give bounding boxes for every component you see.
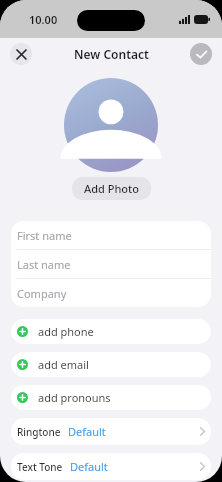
staticText: Default	[70, 459, 108, 474]
staticText: add phone	[38, 324, 94, 339]
button[interactable]: add pronouns	[11, 385, 211, 410]
staticText: add pronouns	[38, 390, 111, 405]
staticText: add email	[38, 357, 89, 372]
staticText: New Contact	[74, 46, 149, 62]
staticText: Add Photo	[84, 181, 139, 196]
staticText: Text Tone	[17, 460, 63, 474]
staticText: Company	[17, 286, 67, 301]
button[interactable]: Company	[11, 279, 211, 307]
staticText: 10.00	[29, 12, 58, 27]
button[interactable]: Ringtone	[11, 418, 211, 445]
staticText: First name	[17, 228, 72, 243]
staticText: Ringtone	[17, 425, 61, 439]
button[interactable]: Add Photo	[72, 177, 151, 200]
button[interactable]: Text Tone	[11, 453, 211, 480]
button[interactable]: Cancel	[10, 43, 32, 65]
button[interactable]: Done	[190, 43, 212, 65]
button[interactable]: add email	[11, 352, 211, 377]
staticText: Default	[68, 424, 106, 439]
staticText: Last name	[17, 257, 71, 272]
button[interactable]: add phone	[11, 319, 211, 344]
button[interactable]: First name	[11, 221, 211, 249]
button[interactable]: Last name	[11, 250, 211, 278]
